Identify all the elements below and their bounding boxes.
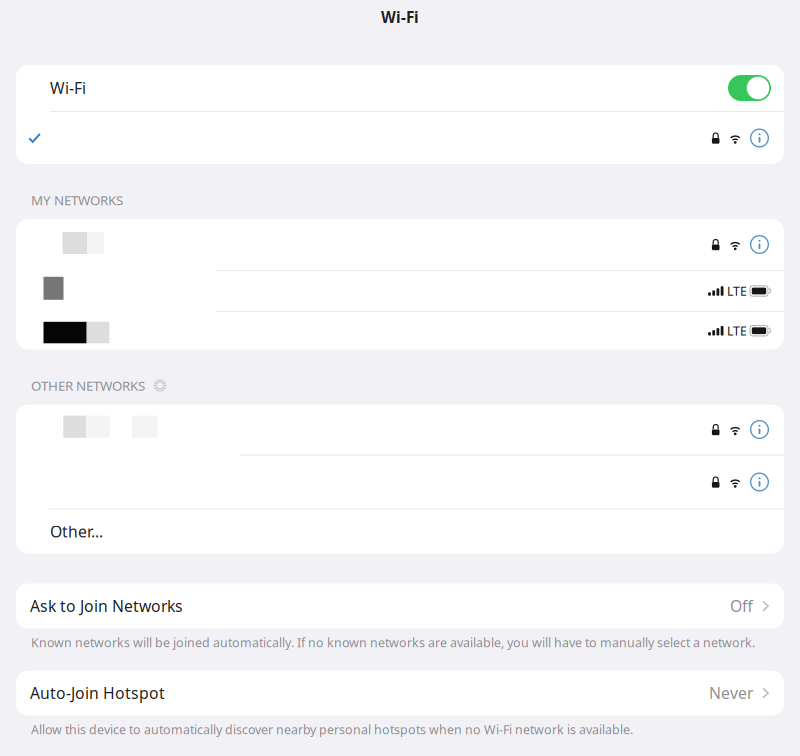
staticText: Wi-Fi (381, 7, 419, 27)
staticText: LTE (727, 283, 747, 299)
button[interactable] (16, 112, 784, 164)
staticText: OTHER NETWORKS (31, 376, 145, 395)
button[interactable]: LTE (16, 271, 784, 311)
staticText: Allow this device to automatically disco… (31, 721, 633, 738)
button[interactable]: Wi-Fi (320, 0, 480, 34)
staticText: Wi-Fi (50, 77, 86, 99)
staticText: Other... (50, 521, 103, 542)
button[interactable] (16, 455, 784, 508)
button[interactable]: Other... (16, 509, 784, 553)
staticText: Ask to Join Networks (30, 595, 183, 617)
staticText: Auto-Join Hotspot (30, 682, 165, 704)
staticText: Known networks will be joined automatica… (31, 634, 755, 651)
staticText: LTE (727, 322, 747, 339)
button[interactable]: Ask to Join Networks (16, 583, 784, 628)
button[interactable] (16, 219, 784, 270)
button[interactable]: Auto-Join Hotspot (16, 670, 784, 715)
button[interactable] (16, 404, 784, 454)
staticText: Never (709, 682, 753, 704)
button[interactable]: Wi-Fi (16, 65, 784, 111)
staticText: MY NETWORKS (31, 191, 123, 209)
staticText: Off (730, 595, 753, 617)
button[interactable]: LTE (16, 312, 784, 349)
